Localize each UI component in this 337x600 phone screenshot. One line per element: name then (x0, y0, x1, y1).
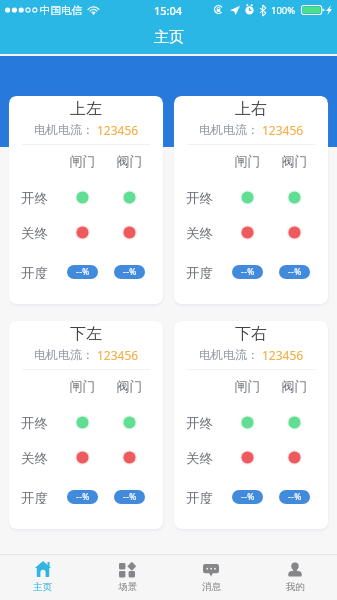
staticText: 下左 (9, 324, 163, 344)
staticText: 开度 (21, 490, 59, 504)
staticText: 主页 (33, 581, 52, 593)
staticText: 阀门 (106, 378, 153, 394)
button[interactable]: --% (279, 490, 310, 504)
staticText: 开终 (186, 415, 224, 430)
staticText: 开度 (186, 490, 224, 504)
staticText: 开度 (21, 265, 59, 279)
staticText: --% (123, 491, 137, 503)
staticText: 下右 (174, 324, 328, 344)
staticText: 阀门 (271, 378, 318, 394)
staticText: --% (76, 491, 90, 503)
button[interactable]: --% (279, 265, 310, 279)
staticText: 主页 (154, 28, 184, 47)
staticText: 消息 (202, 581, 221, 593)
staticText: 闸门 (59, 153, 106, 169)
staticText: 15:04 (154, 3, 183, 18)
button[interactable]: 消息 (169, 555, 253, 600)
staticText: 上左 (9, 99, 163, 119)
button[interactable]: --% (67, 490, 98, 504)
button[interactable]: 场景 (85, 555, 169, 600)
staticText: 电机电流： (34, 122, 94, 137)
button[interactable]: 上右 (174, 96, 328, 304)
staticText: 123456 (97, 347, 139, 363)
staticText: 开终 (21, 190, 59, 205)
staticText: --% (288, 491, 302, 503)
staticText: 123456 (262, 122, 304, 138)
staticText: 阀门 (106, 153, 153, 169)
button[interactable]: --% (114, 265, 145, 279)
button[interactable]: 下左 (9, 321, 163, 529)
staticText: 中国电信 (40, 4, 82, 17)
staticText: 电机电流： (199, 122, 259, 137)
button[interactable]: 我的 (253, 555, 337, 600)
staticText: 电机电流： (199, 347, 259, 362)
staticText: 电机电流： (34, 347, 94, 362)
staticText: --% (123, 266, 137, 278)
staticText: 关终 (186, 225, 224, 240)
staticText: 场景 (118, 581, 137, 593)
staticText: 开终 (21, 415, 59, 430)
staticText: 123456 (97, 122, 139, 138)
button[interactable]: --% (232, 490, 263, 504)
staticText: --% (241, 491, 255, 503)
button[interactable]: --% (232, 265, 263, 279)
staticText: 阀门 (271, 153, 318, 169)
staticText: 闸门 (224, 378, 271, 394)
staticText: 开度 (186, 265, 224, 279)
staticText: 上右 (174, 99, 328, 119)
button[interactable]: --% (114, 490, 145, 504)
staticText: 闸门 (59, 378, 106, 394)
staticText: 关终 (21, 450, 59, 465)
staticText: 123456 (262, 347, 304, 363)
button[interactable]: 上左 (9, 96, 163, 304)
button[interactable]: --% (67, 265, 98, 279)
staticText: 闸门 (224, 153, 271, 169)
button[interactable]: 主页 (0, 555, 85, 600)
staticText: --% (288, 266, 302, 278)
staticText: 我的 (286, 581, 305, 593)
staticText: 关终 (21, 225, 59, 240)
staticText: --% (76, 266, 90, 278)
staticText: 100% (271, 4, 296, 17)
button[interactable]: 下右 (174, 321, 328, 529)
staticText: 开终 (186, 190, 224, 205)
staticText: --% (241, 266, 255, 278)
staticText: 关终 (186, 450, 224, 465)
